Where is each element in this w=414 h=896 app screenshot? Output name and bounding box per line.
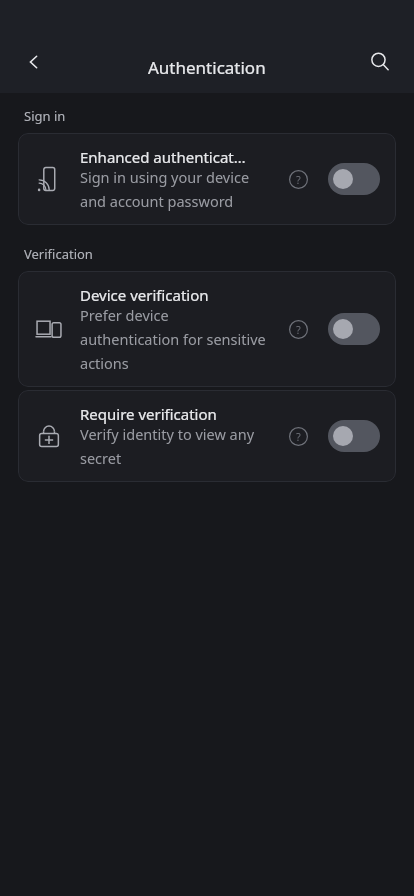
button[interactable]: Device verification [18, 271, 396, 387]
staticText: ? [296, 172, 301, 187]
button[interactable]: Device verification toggle [328, 313, 380, 345]
button[interactable]: Require verification toggle [328, 420, 380, 452]
staticText: Enhanced authenticat… [80, 147, 246, 167]
button[interactable]: Help [278, 159, 318, 199]
button[interactable]: Back [10, 38, 58, 86]
button[interactable]: Require verification [18, 390, 396, 482]
staticText: Verify identity to view any secret [80, 424, 270, 468]
staticText: Device verification [80, 285, 209, 305]
button[interactable]: Help [278, 416, 318, 456]
button[interactable]: Enhanced authenticat… [18, 133, 396, 225]
staticText: Require verification [80, 404, 217, 424]
staticText: ? [296, 322, 301, 337]
staticText: Sign in [24, 107, 66, 125]
button[interactable]: Enhanced authenticat… toggle [328, 163, 380, 195]
staticText: Prefer device authentication for sensiti… [80, 305, 270, 373]
staticText: Authentication [148, 56, 266, 79]
staticText: Sign in using your device and account pa… [80, 167, 270, 211]
button[interactable]: Help [278, 309, 318, 349]
staticText: ? [296, 429, 301, 444]
button[interactable]: Search [356, 38, 404, 86]
staticText: Verification [24, 245, 93, 263]
